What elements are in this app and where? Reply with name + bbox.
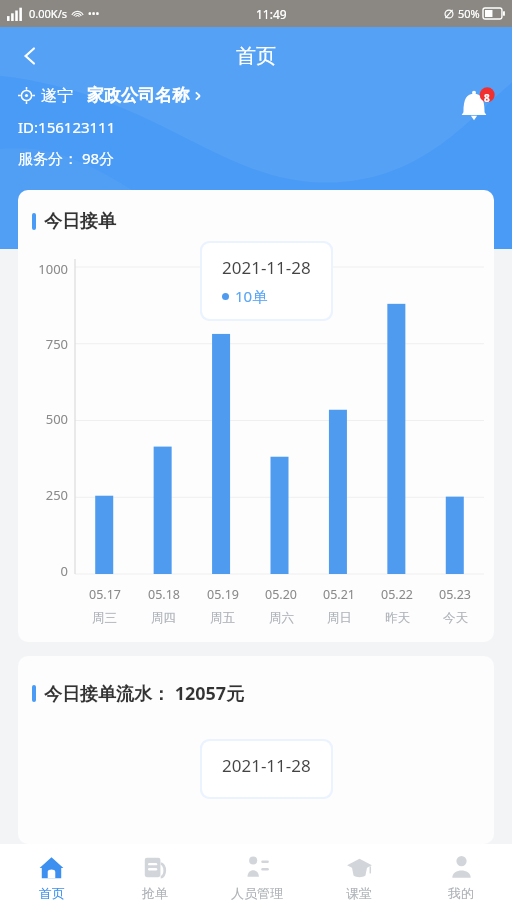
staticText: ••• <box>88 7 100 21</box>
button[interactable]: 今日接单 <box>18 190 494 642</box>
staticText: 05.18 <box>148 586 180 603</box>
button[interactable]: 人员管理 <box>206 844 308 910</box>
staticText: 我的 <box>448 885 474 901</box>
staticText: 服务分： 98分 <box>18 148 115 168</box>
button[interactable]: 今日接单流水： 12057元 <box>18 656 494 844</box>
staticText: 1000 <box>38 260 68 278</box>
staticText: 05.21 <box>323 586 355 603</box>
staticText: 周六 <box>269 610 294 626</box>
staticText: 周三 <box>92 610 117 626</box>
staticText: ID:156123111 <box>18 117 116 137</box>
staticText: 今日接单流水： 12057元 <box>44 681 245 706</box>
staticText: 50% <box>458 6 480 21</box>
button[interactable]: 我的 <box>410 844 512 910</box>
staticText: 05.20 <box>265 586 297 603</box>
staticText: 2021-11-28 <box>222 256 311 279</box>
staticText: 家政公司名称 <box>87 85 189 106</box>
staticText: 首页 <box>236 44 276 69</box>
staticText: 人员管理 <box>231 885 283 901</box>
button[interactable]: Back <box>6 32 54 80</box>
staticText: 05.17 <box>89 586 121 603</box>
button[interactable]: 家政公司名称 <box>87 85 204 106</box>
staticText: 今日接单 <box>44 210 116 233</box>
button[interactable]: Notifications <box>452 85 496 129</box>
staticText: 500 <box>45 410 68 428</box>
staticText: 05.23 <box>439 586 471 603</box>
button[interactable]: 首页 <box>0 844 103 910</box>
staticText: 2021-11-28 <box>222 754 311 777</box>
staticText: 课堂 <box>346 885 372 901</box>
staticText: 0.00K/s <box>29 6 67 21</box>
staticText: 8 <box>484 91 490 105</box>
staticText: 首页 <box>39 885 65 901</box>
button[interactable]: 抢单 <box>103 844 206 910</box>
staticText: 遂宁 <box>41 86 73 106</box>
staticText: 周四 <box>151 610 176 626</box>
staticText: 750 <box>45 335 68 353</box>
button[interactable]: 课堂 <box>308 844 410 910</box>
staticText: 05.22 <box>381 586 413 603</box>
staticText: 0 <box>60 562 68 580</box>
staticText: 昨天 <box>385 610 410 626</box>
staticText: 抢单 <box>142 885 168 901</box>
staticText: 05.19 <box>207 586 239 603</box>
staticText: 10单 <box>235 286 268 306</box>
staticText: 周日 <box>327 610 352 626</box>
staticText: 250 <box>45 486 68 504</box>
staticText: 今天 <box>443 610 468 626</box>
staticText: 11:49 <box>256 6 287 22</box>
staticText: 周五 <box>210 610 235 626</box>
